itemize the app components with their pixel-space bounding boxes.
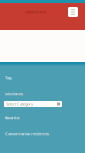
staticText: favorita <box>5 115 19 120</box>
staticText: cajonera.es <box>25 9 46 14</box>
staticText: Select Category <box>6 101 33 107</box>
staticText: secciones <box>5 91 23 96</box>
staticText: Comentarios recientes <box>5 131 49 136</box>
button[interactable]: Select Category <box>4 101 62 107</box>
button[interactable]: Menu <box>68 7 78 17</box>
staticText: Tag <box>5 75 12 80</box>
